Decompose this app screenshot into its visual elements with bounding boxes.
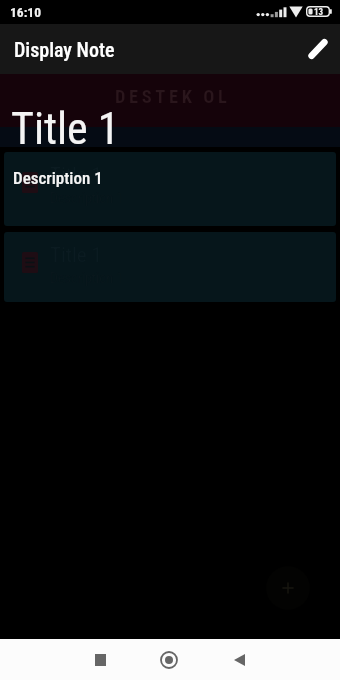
staticText: Title 1	[11, 103, 120, 155]
staticText: Title 1	[50, 163, 102, 188]
button[interactable]: Home	[148, 639, 189, 680]
staticText: Display Note	[14, 38, 115, 61]
staticText: 13	[314, 7, 324, 18]
button[interactable]: Edit	[298, 29, 338, 69]
staticText: Description 1	[13, 168, 103, 188]
button[interactable]: Back	[219, 639, 260, 680]
button[interactable]: Recent apps	[80, 639, 121, 680]
staticText: 16:10	[10, 4, 41, 20]
staticText: DESTEK OL	[115, 86, 231, 108]
